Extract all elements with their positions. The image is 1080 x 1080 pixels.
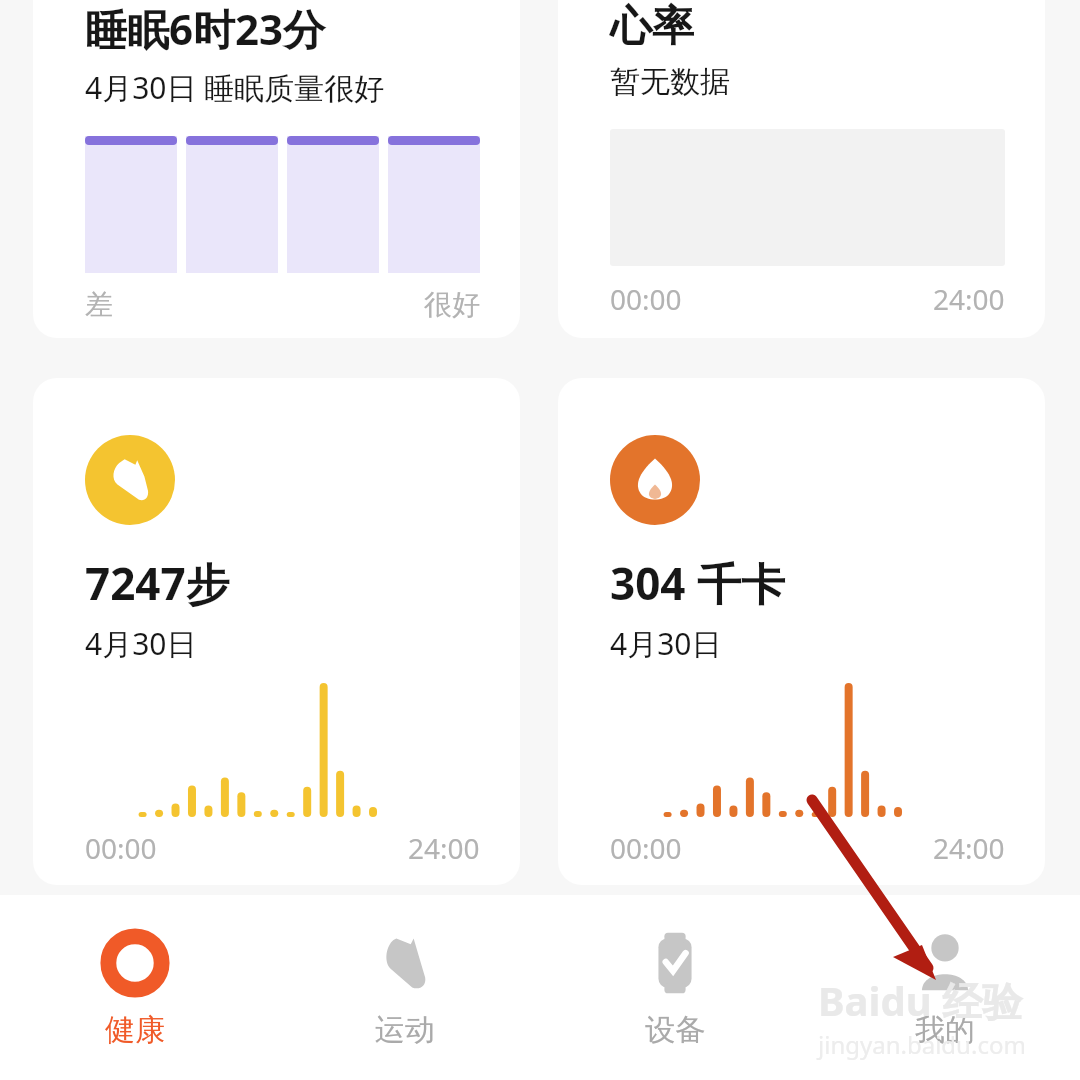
button[interactable]: 我的	[810, 895, 1080, 1080]
button[interactable]: 7247步	[33, 378, 520, 885]
staticText: 运动	[375, 1011, 435, 1049]
staticText: 24:00	[408, 829, 480, 867]
staticText: 4月30日	[85, 623, 197, 664]
staticText: 00:00	[610, 280, 682, 318]
staticText: 24:00	[933, 280, 1005, 318]
button[interactable]: 心率	[558, 0, 1045, 338]
staticText: 设备	[645, 1011, 705, 1049]
button[interactable]: 设备	[540, 895, 810, 1080]
staticText: 24:00	[933, 829, 1005, 867]
staticText: 暂无数据	[610, 63, 730, 101]
staticText: 我的	[915, 1011, 975, 1049]
button[interactable]: 睡眠6时23分	[33, 0, 520, 338]
staticText: 00:00	[610, 829, 682, 867]
staticText: 很好	[424, 287, 480, 322]
staticText: 心率	[610, 0, 694, 53]
staticText: 00:00	[85, 829, 157, 867]
staticText: Baidu 经验	[818, 973, 1023, 1028]
staticText: 4月30日	[610, 623, 722, 664]
staticText: 7247步	[85, 553, 230, 613]
staticText: jingyan.baidu.com	[818, 1028, 1026, 1061]
button[interactable]: 304 千卡	[558, 378, 1045, 885]
staticText: 睡眠6时23分	[85, 0, 326, 57]
staticText: 差	[85, 287, 113, 322]
staticText: 健康	[105, 1011, 165, 1049]
staticText: 4月30日 睡眠质量很好	[85, 67, 385, 108]
staticText: 304 千卡	[610, 553, 785, 613]
button[interactable]: 运动	[270, 895, 540, 1080]
button[interactable]: 健康	[0, 895, 270, 1080]
